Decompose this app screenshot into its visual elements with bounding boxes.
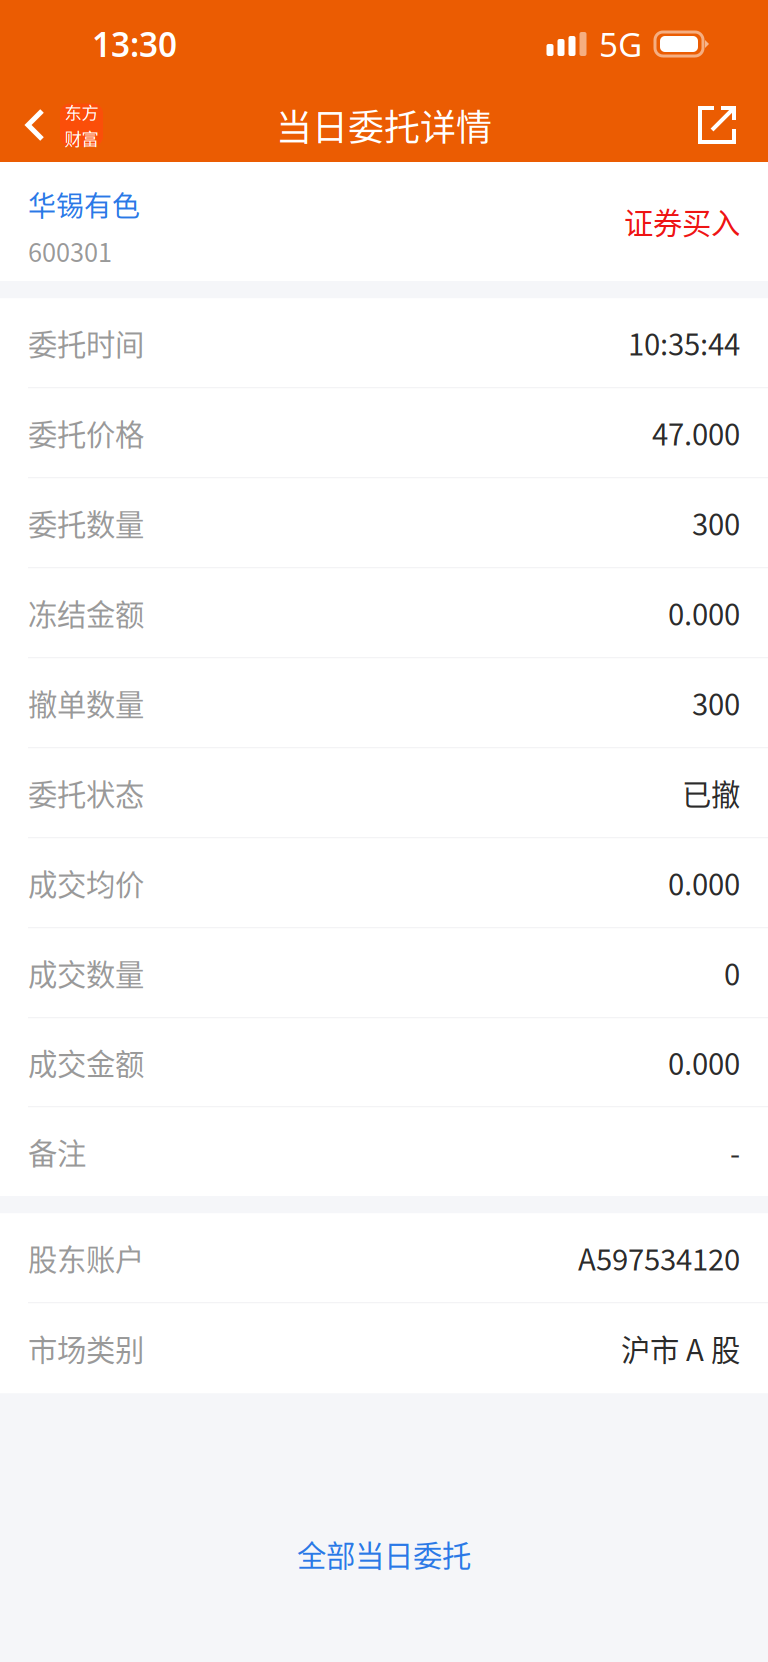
staticText: 成交均价 [28, 861, 144, 904]
staticText: 委托状态 [28, 771, 144, 814]
staticText: 10:35:44 [628, 321, 740, 364]
staticText: 已撤 [682, 771, 740, 814]
staticText: 委托时间 [28, 321, 144, 364]
staticText: - [730, 1130, 740, 1173]
button[interactable]: 分享 [678, 88, 768, 162]
staticText: 0.000 [668, 591, 740, 634]
staticText: 5G [599, 22, 642, 66]
staticText: 撤单数量 [28, 681, 144, 724]
staticText: 委托价格 [28, 411, 144, 454]
staticText: 股东账户 [28, 1236, 144, 1279]
staticText: 300 [692, 501, 740, 544]
staticText: 财富 [64, 125, 98, 151]
button[interactable]: 全部当日委托 [0, 1510, 768, 1598]
staticText: 0 [724, 951, 740, 994]
staticText: 47.000 [652, 411, 740, 454]
staticText: 华锡有色 [28, 184, 140, 224]
staticText: 东方 [64, 99, 98, 124]
staticText: 冻结金额 [28, 591, 144, 634]
staticText: 备注 [28, 1130, 86, 1173]
staticText: 沪市 A 股 [621, 1327, 740, 1369]
staticText: 600301 [28, 232, 112, 269]
staticText: 300 [692, 681, 740, 724]
staticText: 0.000 [668, 1041, 740, 1083]
staticText: A597534120 [578, 1236, 740, 1279]
staticText: 当日委托详情 [276, 99, 492, 151]
staticText: 成交数量 [28, 951, 144, 994]
staticText: 13:30 [92, 22, 177, 66]
staticText: 0.000 [668, 861, 740, 904]
staticText: 全部当日委托 [297, 1533, 471, 1575]
staticText: 成交金额 [28, 1041, 144, 1083]
staticText: 委托数量 [28, 501, 144, 544]
staticText: 证券买入 [624, 200, 740, 242]
button[interactable]: 返回 东方财富 [0, 88, 113, 162]
staticText: 市场类别 [28, 1327, 144, 1369]
